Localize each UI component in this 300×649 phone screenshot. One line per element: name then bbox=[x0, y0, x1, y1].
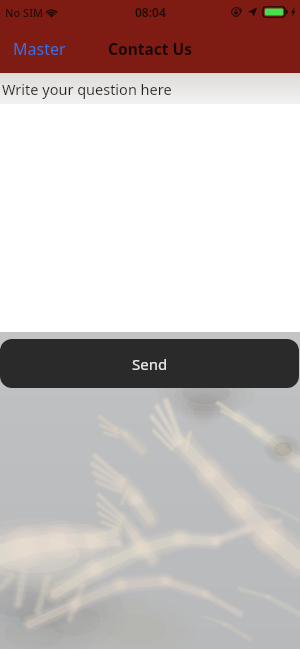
staticText: Write your question here bbox=[2, 79, 172, 99]
button[interactable]: Write your question here bbox=[0, 73, 300, 104]
other: Status icons bbox=[228, 4, 300, 20]
staticText: Master bbox=[13, 38, 66, 60]
staticText: 08:04 bbox=[135, 4, 166, 20]
staticText: Contact Us bbox=[108, 38, 192, 59]
other: Backdrop photo of raised hands bbox=[0, 332, 300, 649]
button[interactable]: Master bbox=[0, 32, 74, 66]
staticText: Send bbox=[132, 354, 168, 374]
staticText: No SIM bbox=[5, 5, 44, 20]
button[interactable]: Send bbox=[0, 339, 299, 388]
